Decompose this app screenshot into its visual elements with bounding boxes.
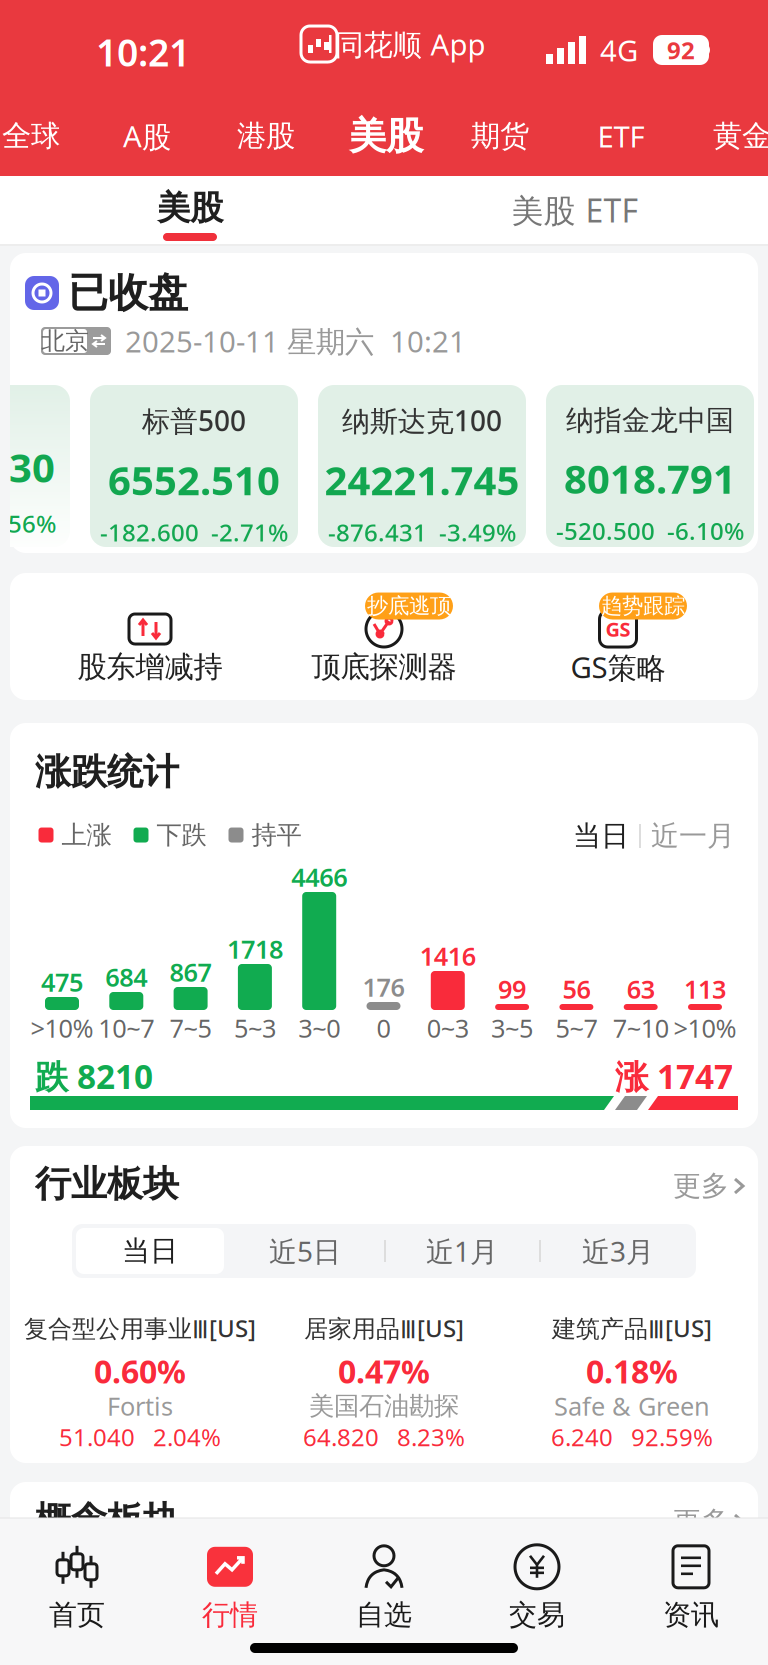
staticText: 居家用品Ⅲ[US] (304, 1312, 464, 1344)
staticText: 概念板块 (35, 1498, 179, 1542)
staticText: ETF (597, 116, 644, 155)
button[interactable]: 更多 (673, 1505, 747, 1539)
staticText: 自选 (356, 1598, 412, 1632)
button[interactable]: 自选 (356, 1544, 412, 1632)
button[interactable]: 美股 (110, 176, 270, 240)
staticText: >10% (673, 1011, 736, 1045)
button[interactable]: ETF (597, 96, 644, 176)
staticText: 行情 (202, 1598, 258, 1632)
staticText: 56% (8, 508, 56, 539)
button[interactable]: 黄金 (713, 96, 768, 176)
staticText: 更多 (673, 1169, 729, 1203)
staticText: -182.600 -2.71% (100, 516, 288, 548)
staticText: 黄金 (713, 118, 768, 154)
button[interactable]: 资讯 (663, 1544, 719, 1632)
staticText: 已收盘 (68, 268, 188, 317)
staticText: 美股 ETF (511, 189, 638, 231)
staticText: 标普500 (142, 402, 246, 439)
staticText: 1718 (227, 932, 283, 966)
staticText: 跌 8210 (35, 1054, 153, 1098)
staticText: 56 (562, 972, 590, 1006)
staticText: A股 (123, 116, 171, 155)
staticText: 475 (41, 965, 83, 999)
staticText: >10% (30, 1011, 93, 1045)
button[interactable]: 股东增减持 (70, 583, 230, 695)
staticText: 当日 (573, 819, 629, 853)
button[interactable]: 近3月 (582, 1232, 654, 1270)
staticText: GS (605, 616, 630, 642)
button[interactable]: 切换时区 (41, 327, 111, 355)
staticText: 港股 (237, 118, 295, 154)
button[interactable]: 近5日 (269, 1232, 341, 1270)
staticText: 10~7 (98, 1011, 154, 1045)
button[interactable]: 交易 (509, 1544, 565, 1632)
staticText: 纳指金龙中国 (566, 403, 734, 438)
button[interactable]: 复合型公用事业Ⅲ[US] (20, 1302, 260, 1462)
staticText: 63 (627, 972, 655, 1006)
staticText: 美国石油勘探 (309, 1390, 459, 1421)
staticText: 复合型公用事业Ⅲ[US] (24, 1312, 256, 1344)
button[interactable]: A股 (123, 96, 171, 176)
staticText: 2025-10-11 星期六 10:21 (125, 321, 466, 360)
staticText: 6552.510 (108, 453, 280, 506)
staticText: 1416 (420, 939, 476, 973)
button[interactable]: 居家用品Ⅲ[US] (264, 1302, 504, 1462)
staticText: 上涨 (61, 819, 111, 850)
staticText: 684 (105, 960, 147, 994)
staticText: 美股 (157, 187, 223, 228)
staticText: 867 (170, 955, 212, 989)
staticText: 3~0 (298, 1011, 340, 1045)
staticText: 交易 (509, 1598, 565, 1632)
staticText: 24221.745 (324, 453, 519, 506)
button[interactable]: 首页 (49, 1544, 105, 1632)
staticText: 趋势跟踪 (601, 593, 685, 619)
button[interactable]: 期货 (471, 96, 529, 176)
staticText: 7~10 (613, 1011, 669, 1045)
staticText: 同花顺 App (334, 24, 485, 63)
staticText: 抄底逃顶 (367, 593, 451, 619)
staticText: 3~5 (491, 1011, 533, 1045)
button[interactable]: 全球 (2, 96, 60, 176)
staticText: 期货 (471, 118, 529, 154)
staticText: 51.040 2.04% (59, 1421, 221, 1453)
staticText: 0 (376, 1011, 390, 1045)
staticText: 4G (600, 30, 638, 69)
staticText: GS策略 (570, 647, 665, 686)
staticText: 美股 (349, 113, 423, 159)
staticText: 10:21 (96, 27, 190, 77)
button[interactable]: 当日 (573, 819, 629, 853)
staticText: 纳斯达克100 (342, 402, 502, 439)
button[interactable]: 美股 (349, 96, 423, 176)
button[interactable]: 美股 ETF (511, 189, 638, 231)
button[interactable]: 纳斯达克100 (318, 385, 526, 547)
staticText: 更多 (673, 1505, 729, 1539)
button[interactable]: 标普500 (90, 385, 298, 547)
staticText: 5~3 (234, 1011, 276, 1045)
staticText: 全球 (2, 118, 60, 154)
staticText: 30 (9, 440, 55, 494)
button[interactable]: 纳指金龙中国 (546, 385, 754, 547)
staticText: 近1月 (426, 1232, 498, 1270)
staticText: 涨 1747 (615, 1054, 733, 1098)
button[interactable]: 建筑产品Ⅲ[US] (512, 1302, 752, 1462)
staticText: 下跌 (156, 819, 206, 850)
staticText: 0~3 (427, 1011, 469, 1045)
button[interactable]: 港股 (237, 96, 295, 176)
staticText: 113 (684, 972, 726, 1006)
button[interactable]: GS (538, 583, 698, 695)
staticText: 持平 (251, 819, 301, 850)
button[interactable]: 近一月 (651, 819, 735, 853)
staticText: 176 (362, 970, 404, 1004)
button[interactable]: 近1月 (426, 1232, 498, 1270)
staticText: 92 (667, 34, 695, 66)
staticText: 0.47% (338, 1350, 430, 1392)
staticText: 64.820 8.23% (303, 1421, 465, 1453)
staticText: 当日 (122, 1234, 178, 1268)
staticText: 8018.791 (564, 452, 736, 505)
button[interactable]: 行情 (202, 1544, 258, 1632)
staticText: 7~5 (170, 1011, 212, 1045)
button[interactable]: 更多 (673, 1169, 747, 1203)
button[interactable]: 顶底探测器 (304, 583, 464, 695)
staticText: 北京 (41, 326, 89, 356)
button[interactable]: 当日 (76, 1228, 224, 1274)
